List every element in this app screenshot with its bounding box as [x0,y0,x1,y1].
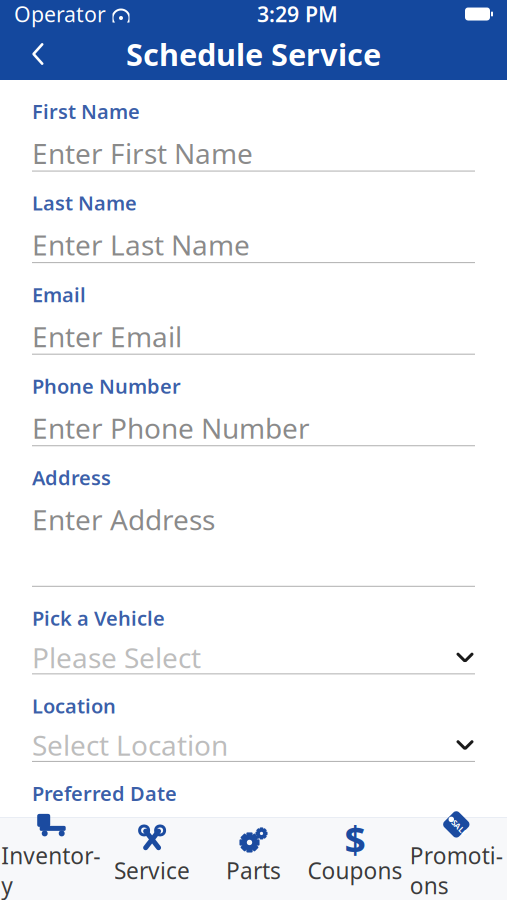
button[interactable]: Service [101,818,203,899]
staticText: Enter Phone Number [32,409,310,446]
staticText: Email [32,281,86,308]
button[interactable]: Location [32,674,475,762]
staticText: $ [344,815,365,864]
staticText: Coupons [307,855,402,885]
staticText: Phone Number [32,373,181,399]
staticText: Operator [14,0,106,28]
button[interactable]: Inventory [0,803,101,900]
staticText: Address [32,464,111,491]
staticText: 3:29 PM [257,0,338,28]
button[interactable]: $ [304,818,406,899]
button[interactable]: Parts [203,818,304,899]
staticText: Last Name [32,190,137,216]
staticText: Service [114,855,190,885]
staticText: SALE [450,822,468,833]
staticText: Please Select [32,639,201,676]
button[interactable]: Phone Number [32,355,475,446]
staticText: Enter Last Name [32,226,250,263]
staticText: Enter Email [32,318,182,355]
button[interactable]: First Name [32,80,475,172]
staticText: Inventory [1,840,100,900]
staticText: Pick a Vehicle [32,605,165,631]
button[interactable]: Email [32,263,475,355]
button[interactable]: Pick a Vehicle [32,587,475,674]
button[interactable]: SALE [406,803,507,900]
staticText: Enter First Name [32,135,253,172]
staticText: Schedule Service [126,34,381,74]
staticText: Enter Address [32,501,215,538]
button[interactable]: Address [32,446,475,587]
staticText: Select Location [32,726,228,763]
staticText: First Name [32,98,140,125]
staticText: Parts [226,855,281,885]
staticText: Promotions [410,840,503,900]
button[interactable]: Last Name [32,172,475,263]
staticText: Preferred Date [32,780,177,806]
button[interactable]: Back [16,32,60,76]
staticText: Location [32,692,116,719]
